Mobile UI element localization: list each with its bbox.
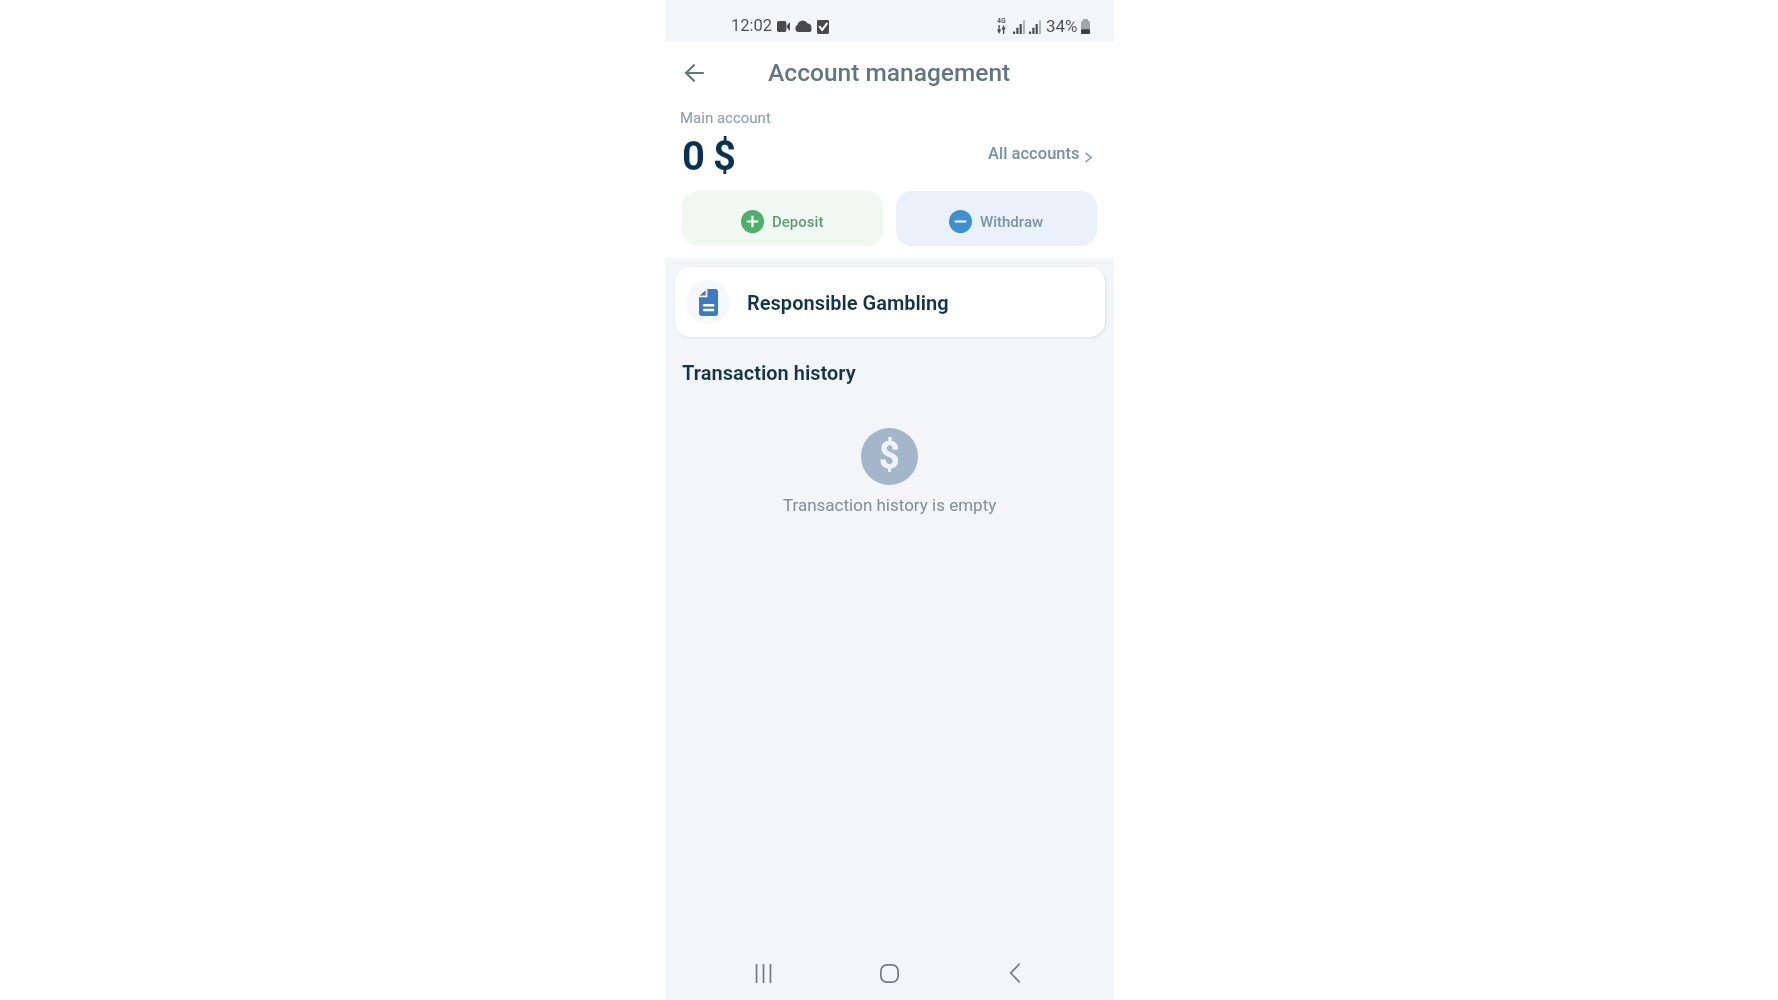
staticText: Transaction history is empty (783, 495, 997, 515)
staticText: 34% (1046, 16, 1078, 36)
button[interactable]: All accounts (984, 145, 1096, 170)
staticText: Main account (680, 109, 771, 127)
staticText: Transaction history (682, 361, 856, 384)
staticText: Responsible Gambling (747, 291, 949, 314)
staticText: Account management (768, 58, 1011, 87)
button[interactable]: Home (869, 953, 909, 993)
staticText: 4G (997, 17, 1006, 25)
button[interactable]: Back (995, 953, 1035, 993)
button[interactable]: Responsible Gambling (675, 267, 1105, 337)
staticText: Deposit (772, 213, 824, 231)
button[interactable]: Deposit (682, 191, 883, 246)
button[interactable]: Withdraw (896, 191, 1097, 246)
button[interactable]: Recents (743, 953, 783, 993)
button[interactable]: Back (672, 51, 716, 95)
staticText: $ (713, 133, 736, 180)
staticText: All accounts (988, 144, 1080, 163)
staticText: Withdraw (980, 213, 1044, 231)
staticText: $ (879, 435, 900, 477)
staticText: 0 (682, 133, 705, 180)
staticText: 12:02 (731, 16, 773, 35)
